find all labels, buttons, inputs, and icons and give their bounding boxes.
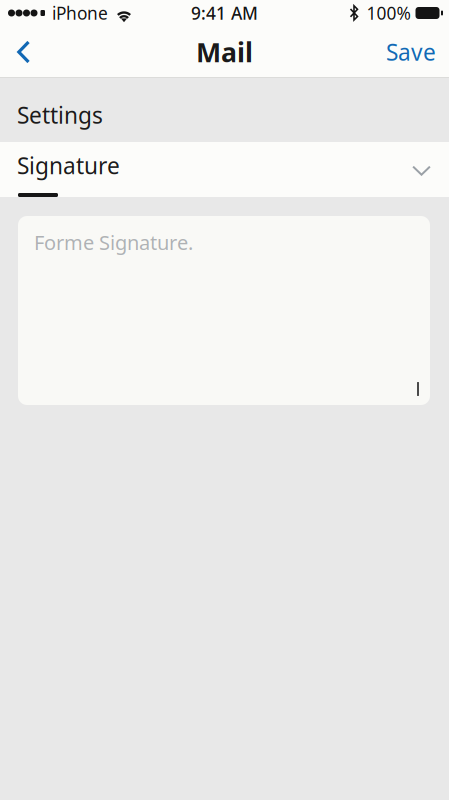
staticText: iPhone <box>52 1 108 24</box>
staticText: Forme Signature. <box>34 229 193 256</box>
staticText: Signature <box>17 150 120 180</box>
staticText: 9:41 AM <box>191 1 258 24</box>
button[interactable]: Save <box>370 30 449 78</box>
staticText: 100% <box>366 1 410 24</box>
button[interactable]: Signature text field <box>0 197 449 405</box>
button[interactable]: Signature <box>0 142 449 197</box>
button[interactable]: Back <box>0 30 46 78</box>
staticText: Save <box>386 37 436 67</box>
staticText: Settings <box>17 100 103 130</box>
staticText: Mail <box>196 34 253 70</box>
